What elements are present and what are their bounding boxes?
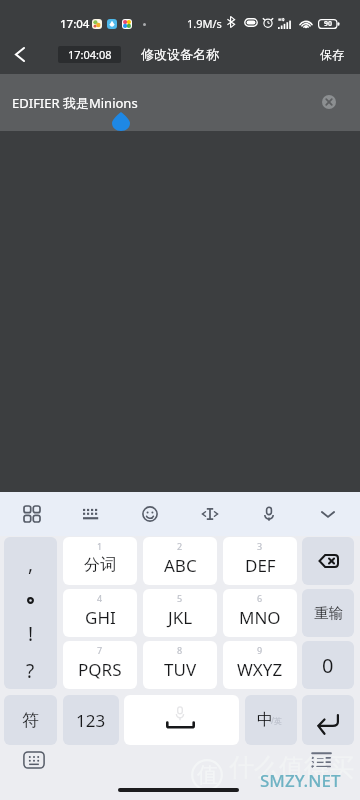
button[interactable]: Emoji (133, 497, 167, 531)
staticText: 17:04:08 (68, 47, 112, 62)
staticText: EDIFIER 我是Minions (12, 94, 138, 112)
staticText: WXYZ (237, 658, 283, 681)
staticText: 123 (76, 709, 106, 732)
staticText: 分词 (84, 555, 116, 575)
staticText: SMZY.NET (260, 769, 341, 792)
staticText: TUV (164, 658, 197, 681)
button[interactable]: 2 (143, 537, 217, 585)
staticText: /英 (271, 715, 282, 726)
staticText: 重输 (314, 604, 343, 622)
staticText: ? (26, 658, 35, 684)
button[interactable]: 符 (4, 695, 57, 745)
staticText: 保存 (320, 47, 344, 62)
staticText: 6 (257, 592, 263, 604)
staticText: 7 (97, 644, 103, 656)
staticText: 符 (22, 710, 39, 731)
staticText: GHI (85, 606, 116, 629)
staticText: PQRS (78, 658, 122, 681)
button[interactable]: 重输 (302, 589, 354, 637)
button[interactable]: 9 (223, 641, 297, 689)
button[interactable]: Space (124, 695, 239, 745)
button[interactable]: Tools (15, 497, 49, 531)
button[interactable]: Language (245, 695, 297, 745)
button[interactable]: 4 (63, 589, 137, 637)
staticText: 9 (257, 644, 263, 656)
button[interactable]: Hide keyboard (311, 497, 345, 531)
button[interactable]: 8 (143, 641, 217, 689)
staticText: 修改设备名称 (141, 46, 219, 62)
staticText: 值 (197, 762, 218, 788)
button[interactable]: 保存 (304, 37, 360, 72)
button[interactable]: 5 (143, 589, 217, 637)
button[interactable]: Backspace (302, 537, 354, 585)
button[interactable]: Voice input (252, 497, 286, 531)
staticText: 3 (257, 540, 263, 552)
button[interactable]: Keyboard layout (74, 497, 108, 531)
button[interactable]: Clipboard list (310, 751, 332, 769)
button[interactable]: Move cursor (193, 497, 227, 531)
button[interactable]: Switch input method (23, 751, 45, 769)
button[interactable]: 7 (63, 641, 137, 689)
staticText: 90 (324, 19, 333, 29)
staticText: DEF (245, 554, 276, 577)
staticText: 2 (177, 540, 183, 552)
staticText: 8 (177, 644, 183, 656)
staticText: 1 (97, 540, 103, 552)
staticText: 中 (257, 710, 273, 730)
button[interactable]: Clear text (322, 95, 336, 109)
staticText: MNO (239, 606, 281, 629)
button[interactable]: Back (0, 34, 40, 74)
staticText: ! (28, 621, 34, 647)
staticText: 0 (322, 652, 334, 679)
staticText: JKL (168, 606, 193, 629)
button[interactable]: 0 (302, 641, 354, 689)
button[interactable]: 123 (63, 695, 119, 745)
button[interactable]: 3 (223, 537, 297, 585)
button[interactable]: 6 (223, 589, 297, 637)
button[interactable]: Punctuation (4, 537, 57, 689)
button[interactable]: 1 (63, 537, 137, 585)
staticText: 什么值得买 (229, 752, 354, 783)
staticText: 4 (97, 592, 103, 604)
staticText: , (28, 551, 34, 577)
button[interactable]: Enter (302, 695, 354, 745)
staticText: 5 (177, 592, 183, 604)
staticText: 17:04 (60, 16, 90, 32)
staticText: 1.9M/s (187, 16, 222, 31)
staticText: ABC (164, 554, 197, 577)
